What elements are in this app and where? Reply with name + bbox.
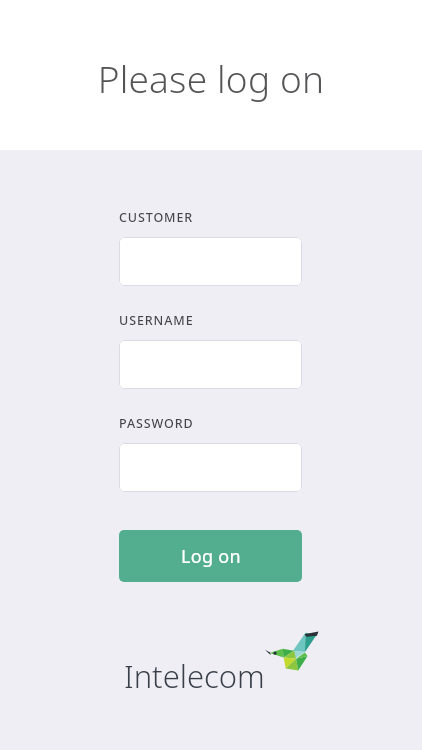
staticText: Please log on xyxy=(0,53,422,103)
staticText: Intelecom xyxy=(124,655,265,697)
button[interactable]: Text input field xyxy=(119,340,302,389)
button[interactable]: Log on xyxy=(119,530,302,582)
staticText: USERNAME xyxy=(119,312,194,329)
button[interactable]: Text input field xyxy=(119,443,302,492)
button[interactable]: Text input field xyxy=(119,237,302,286)
other: Intelecom logo xyxy=(267,629,319,681)
staticText: CUSTOMER xyxy=(119,209,194,226)
staticText: PASSWORD xyxy=(119,415,194,432)
staticText: Log on xyxy=(181,544,241,569)
